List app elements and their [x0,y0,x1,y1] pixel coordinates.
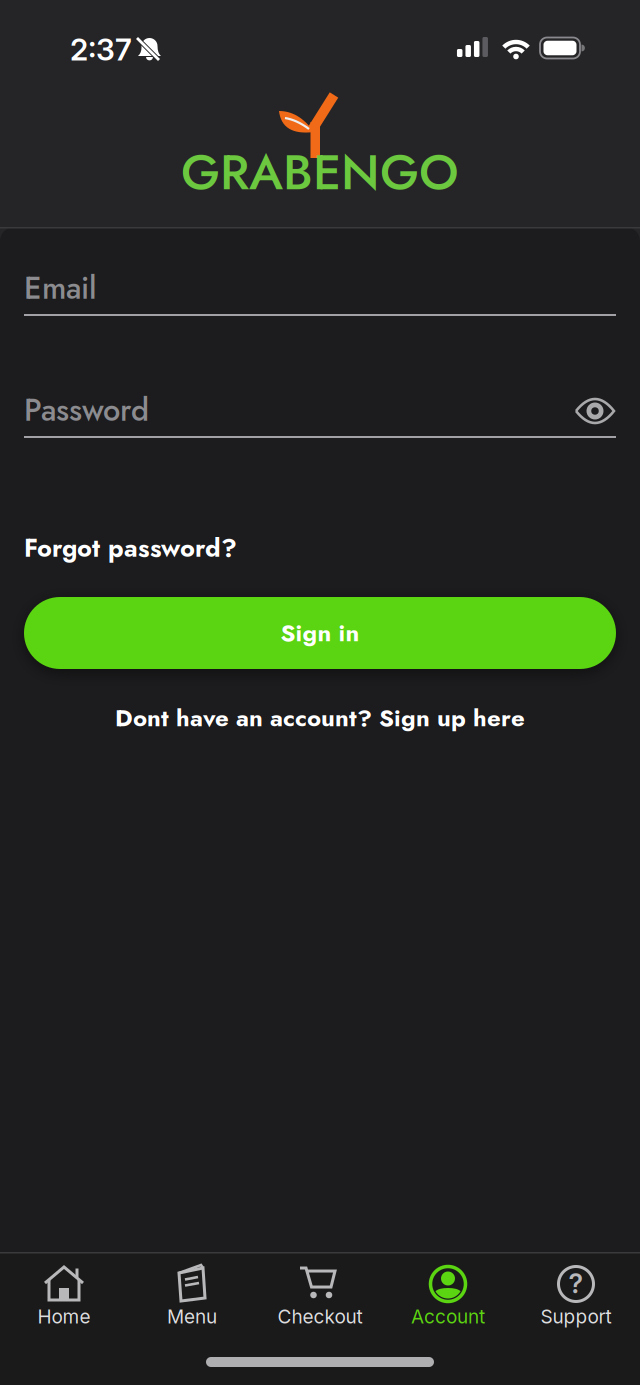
staticText: Home [37,1305,90,1328]
staticText: Forgot password? [24,530,237,566]
staticText: ? [568,1267,583,1300]
staticText: Checkout [277,1305,362,1328]
staticText: Support [540,1305,611,1328]
staticText: Password [24,388,149,432]
button[interactable]: Checkout [256,1252,384,1352]
staticText: Email [24,266,97,310]
button[interactable]: Home [0,1252,128,1352]
button[interactable]: Email [24,258,616,318]
staticText: Account [411,1305,485,1328]
button[interactable]: ? [512,1252,640,1352]
button[interactable]: Dont have an account? Sign up here [0,696,640,740]
staticText: Menu [167,1305,217,1328]
staticText: GRABENGO [181,137,459,207]
button[interactable]: Account [384,1252,512,1352]
staticText: 2:37 [70,31,132,68]
button[interactable]: Sign in [24,597,616,669]
staticText: Dont have an account? Sign up here [115,701,525,735]
button[interactable]: Password [24,380,616,440]
button[interactable] [573,393,617,433]
button[interactable]: Forgot password? [24,526,616,570]
staticText: Sign in [280,616,359,650]
button[interactable]: Menu [128,1252,256,1352]
